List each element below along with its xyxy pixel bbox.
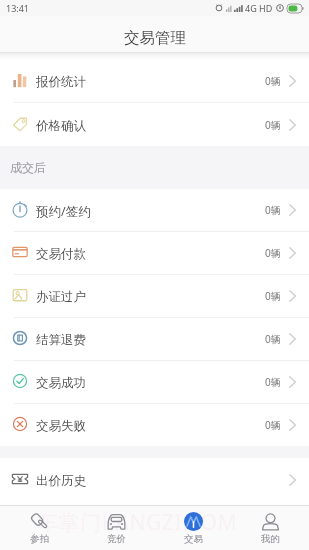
- staticText: 竞价: [107, 533, 126, 545]
- staticText: 成交后: [10, 160, 46, 175]
- staticText: 交易成功: [36, 375, 86, 391]
- staticText: 交易失败: [36, 418, 86, 434]
- button[interactable]: 竞价 Bidding: [78, 506, 155, 550]
- staticText: 交易管理: [124, 28, 186, 48]
- staticText: 0辆: [265, 203, 281, 217]
- button[interactable]: 办证过户: [0, 275, 309, 317]
- staticText: 我的: [261, 533, 280, 545]
- staticText: 办证过户: [36, 289, 86, 305]
- staticText: 价格确认: [36, 118, 86, 134]
- staticText: 参拍: [30, 533, 49, 545]
- button[interactable]: 出价历史: [0, 458, 309, 501]
- button[interactable]: 价格确认: [0, 103, 309, 146]
- button[interactable]: 结算退费: [0, 318, 309, 360]
- staticText: HD: [259, 2, 273, 14]
- button[interactable]: 参拍 Auctions: [0, 506, 78, 550]
- staticText: 交易付款: [36, 246, 86, 262]
- button[interactable]: 预约/签约: [0, 189, 309, 231]
- button[interactable]: 交易成功: [0, 361, 309, 403]
- button[interactable]: 交易失败: [0, 404, 309, 446]
- staticText: 0辆: [265, 375, 281, 389]
- staticText: 4G: [245, 2, 257, 14]
- button[interactable]: 报价统计: [0, 60, 309, 102]
- button[interactable]: 交易 Transactions: [155, 506, 232, 550]
- staticText: 0辆: [265, 74, 281, 88]
- staticText: 0辆: [265, 332, 281, 346]
- staticText: 车掌门KANGZI.COM: [37, 508, 238, 537]
- button[interactable]: 交易付款: [0, 232, 309, 274]
- staticText: 0辆: [265, 246, 281, 260]
- staticText: 出价历史: [36, 473, 86, 489]
- staticText: 交易: [184, 533, 203, 545]
- button[interactable]: 我的 Profile: [232, 506, 309, 550]
- staticText: 13:41: [6, 2, 30, 14]
- staticText: 结算退费: [36, 332, 86, 348]
- staticText: 0辆: [265, 289, 281, 303]
- staticText: 预约/签约: [36, 203, 91, 220]
- staticText: 0辆: [265, 118, 281, 132]
- staticText: 0辆: [265, 418, 281, 432]
- staticText: 报价统计: [36, 74, 86, 90]
